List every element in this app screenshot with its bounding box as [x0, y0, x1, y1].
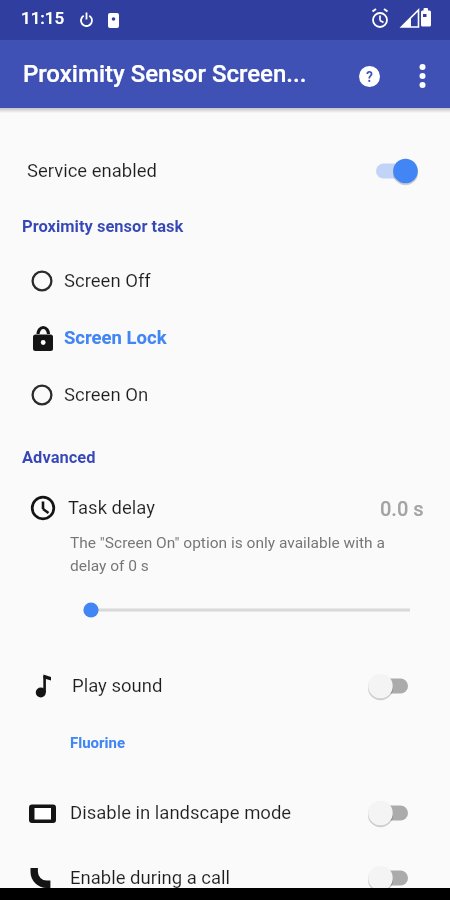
- button[interactable]: Screen Off: [0, 256, 450, 306]
- button[interactable]: Screen On: [0, 370, 450, 420]
- staticText: Screen On: [64, 384, 149, 406]
- button[interactable]: Play sound: [0, 661, 450, 711]
- staticText: 0.0 s: [380, 497, 424, 520]
- button[interactable]: Service enabled: [0, 146, 450, 196]
- staticText: The "Screen On" option is only available…: [70, 534, 385, 552]
- staticText: Disable in landscape mode: [70, 802, 292, 824]
- staticText: Screen Lock: [64, 327, 167, 349]
- staticText: Enable during a call: [70, 867, 231, 889]
- staticText: Proximity Sensor Screen...: [23, 60, 307, 88]
- button[interactable]: Screen Lock: [0, 313, 450, 363]
- staticText: Task delay: [68, 497, 156, 519]
- button[interactable]: ?: [350, 57, 388, 95]
- button[interactable]: Disable in landscape mode: [0, 788, 450, 838]
- button[interactable]: Fluorine: [55, 728, 205, 758]
- staticText: Play sound: [72, 675, 163, 697]
- button[interactable]: Enable during a call: [0, 853, 450, 900]
- staticText: Advanced: [22, 448, 96, 467]
- button[interactable]: [0, 595, 450, 625]
- staticText: 11:15: [21, 8, 65, 28]
- staticText: Proximity sensor task: [22, 217, 184, 236]
- button[interactable]: [404, 55, 442, 93]
- staticText: Service enabled: [27, 160, 157, 182]
- staticText: delay of 0 s: [70, 557, 149, 575]
- staticText: Screen Off: [64, 270, 151, 292]
- staticText: ?: [366, 69, 373, 85]
- button[interactable]: Task delay: [0, 483, 450, 533]
- staticText: Fluorine: [70, 734, 126, 752]
